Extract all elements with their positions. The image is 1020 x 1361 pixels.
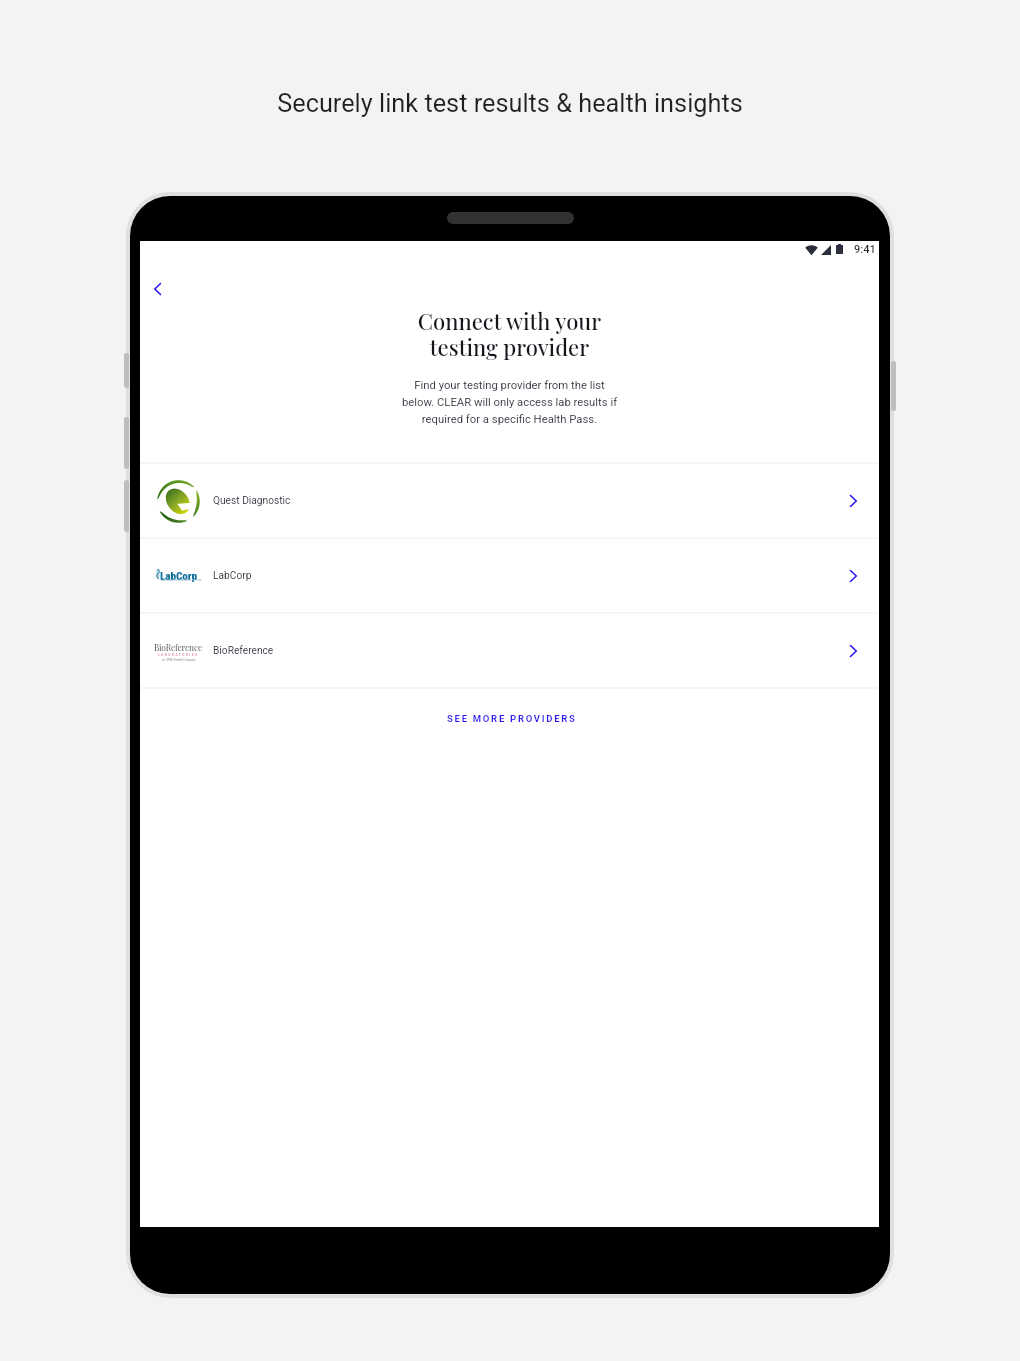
button[interactable]: Back [141,272,174,305]
staticText: BioReference [154,642,203,653]
button[interactable]: Quest Diagnostic [140,464,879,537]
staticText: 9:41 [854,243,876,256]
staticText: SEE MORE PROVIDERS [447,713,577,724]
staticText: Connect with your testing provider [140,306,879,362]
staticText: an OPKO Health Company [162,658,196,661]
staticText: Securely link test results & health insi… [0,89,1020,119]
staticText: LabCorp [213,570,252,582]
button[interactable]: BioReference [140,614,879,687]
staticText: LabCorp [160,569,198,582]
staticText: BioReference [213,645,274,657]
staticText: Laboratory Corporation of America [161,579,202,582]
staticText: LABORATORIES [158,653,199,657]
staticText: Quest Diagnostic [213,495,291,507]
button[interactable]: LabCorp [140,539,879,612]
button[interactable]: SEE MORE PROVIDERS [140,708,879,728]
staticText: Find your testing provider from the list… [140,379,879,426]
